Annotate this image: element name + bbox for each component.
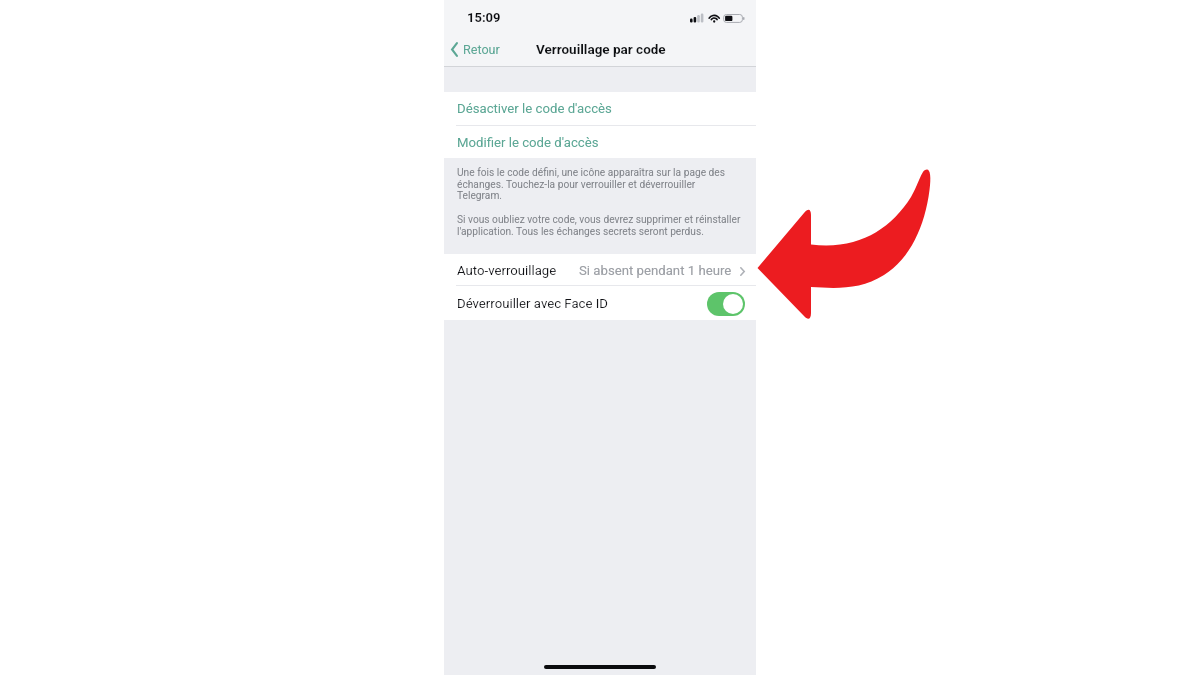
staticText: Retour [463, 42, 500, 57]
staticText: Une fois le code défini, une icône appar… [457, 167, 725, 201]
button[interactable]: Désactiver le code d'accès [444, 92, 756, 125]
staticText: Auto-verrouillage [457, 263, 557, 278]
button[interactable]: Déverrouiller avec Face ID [444, 286, 756, 319]
staticText: Désactiver le code d'accès [457, 101, 612, 116]
staticText: Déverrouiller avec Face ID [457, 296, 609, 311]
button[interactable]: Auto-verrouillage [444, 254, 756, 285]
staticText: Si absent pendant 1 heure [579, 263, 732, 278]
staticText: Verrouillage par code [536, 41, 666, 57]
staticText: 15:09 [467, 10, 501, 25]
button[interactable]: Déverrouiller avec Face ID [707, 292, 745, 316]
button[interactable]: Modifier le code d'accès [444, 126, 756, 158]
staticText: Si vous oubliez votre code, vous devrez … [457, 214, 741, 237]
other: Arrow pointing to Auto-lock setting [0, 0, 1200, 675]
button[interactable]: Retour [446, 40, 507, 59]
staticText: Modifier le code d'accès [457, 135, 599, 150]
